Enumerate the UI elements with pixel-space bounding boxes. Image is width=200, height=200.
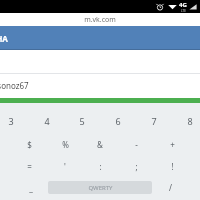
- button[interactable]: _: [24, 179, 38, 195]
- staticText: 4G: [179, 1, 187, 9]
- button[interactable]: +: [164, 136, 180, 152]
- button[interactable]: &: [92, 136, 108, 152]
- button[interactable]: :: [92, 158, 108, 174]
- staticText: _: [29, 182, 33, 193]
- button[interactable]: $: [21, 136, 37, 152]
- staticText: НА: [0, 33, 8, 44]
- button[interactable]: %: [57, 136, 73, 152]
- button[interactable]: 3: [3, 113, 19, 129]
- staticText: 5: [79, 115, 85, 127]
- staticText: 4: [44, 115, 50, 127]
- staticText: QWERTY: [88, 184, 113, 192]
- staticText: LTE: [181, 9, 186, 13]
- staticText: +: [170, 139, 175, 150]
- staticText: &: [97, 139, 103, 150]
- button[interactable]: /: [163, 179, 177, 195]
- button[interactable]: 5: [74, 113, 90, 129]
- other: Alarm set: [156, 3, 164, 11]
- button[interactable]: !: [164, 158, 180, 174]
- staticText: m.vk.com: [84, 15, 116, 25]
- button[interactable]: 7: [146, 113, 162, 129]
- button[interactable]: =: [21, 158, 37, 174]
- staticText: 3: [8, 115, 14, 127]
- button[interactable]: 4: [39, 113, 55, 129]
- staticText: /: [169, 182, 172, 193]
- staticText: $: [27, 139, 32, 150]
- button[interactable]: sonoz67: [0, 80, 29, 91]
- other: Wi-Fi signal: [168, 3, 177, 11]
- staticText: sonoz67: [0, 80, 29, 91]
- button[interactable]: QWERTY: [48, 181, 152, 194]
- staticText: %: [62, 139, 69, 150]
- other: Mobile signal: [189, 3, 197, 11]
- staticText: 7: [151, 115, 157, 127]
- button[interactable]: -: [128, 136, 144, 152]
- staticText: -: [135, 139, 138, 150]
- staticText: ': [64, 161, 66, 172]
- staticText: =: [27, 161, 32, 172]
- staticText: ;: [135, 161, 138, 172]
- button[interactable]: НА: [0, 26, 200, 50]
- staticText: 8: [187, 115, 193, 127]
- button[interactable]: 6: [110, 113, 126, 129]
- button[interactable]: ;: [128, 158, 144, 174]
- button[interactable]: 8: [182, 113, 198, 129]
- staticText: 6: [115, 115, 121, 127]
- button[interactable]: m.vk.com: [0, 13, 200, 26]
- button[interactable]: ': [57, 158, 73, 174]
- staticText: :: [99, 161, 102, 172]
- staticText: !: [171, 161, 174, 172]
